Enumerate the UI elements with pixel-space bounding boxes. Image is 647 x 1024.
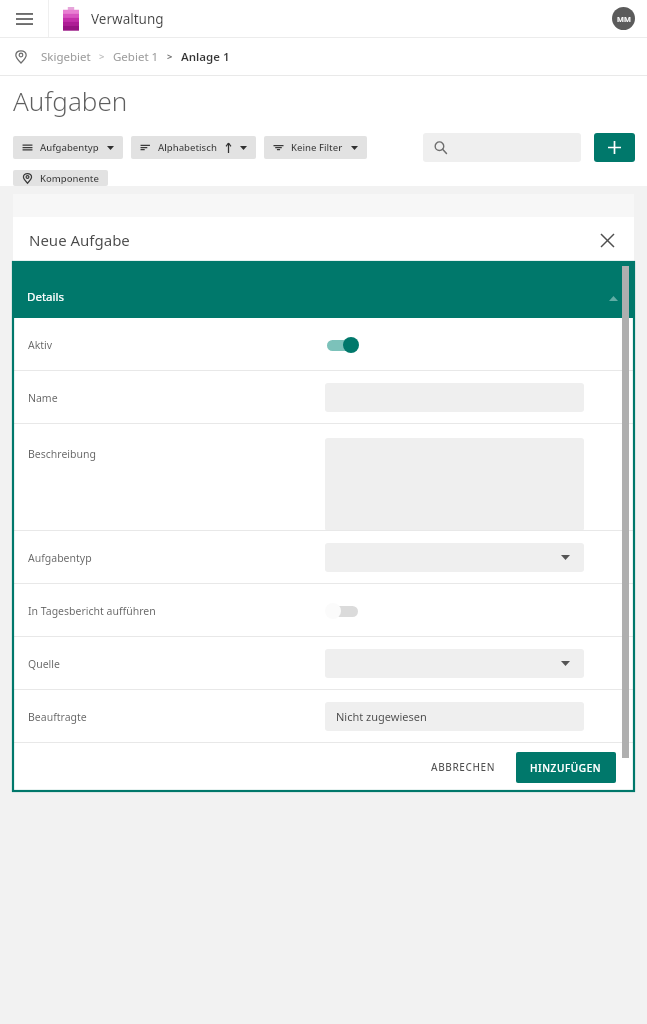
staticText: MM xyxy=(617,14,631,24)
staticText: In Tagesbericht aufführen xyxy=(28,604,156,618)
staticText: Komponente xyxy=(40,172,99,185)
button[interactable]: Gebiet 1 xyxy=(113,49,159,65)
button[interactable]: Fälligkeiten xyxy=(13,247,634,300)
staticText: > xyxy=(99,50,105,63)
staticText: Alphabetisch xyxy=(158,141,217,154)
button[interactable]: Close xyxy=(594,227,620,253)
staticText: Aufgabentyp xyxy=(28,551,92,565)
staticText: HINZUFÜGEN xyxy=(530,761,602,775)
button[interactable]: Menu xyxy=(0,0,48,37)
button[interactable]: Skigebiet xyxy=(41,49,91,65)
button[interactable]: HINZUFÜGEN xyxy=(516,752,616,783)
staticText: Skigebiet xyxy=(41,49,91,65)
staticText: > xyxy=(167,50,173,63)
button[interactable]: Details xyxy=(13,262,634,318)
button[interactable]: Komponente xyxy=(13,170,108,186)
staticText: Aufgaben xyxy=(13,83,128,118)
staticText: Tätigkeiten xyxy=(26,213,86,229)
staticText: Details xyxy=(27,289,64,305)
button[interactable]: Tagesbericht off xyxy=(325,599,367,623)
staticText: Beschreibung xyxy=(28,447,96,461)
staticText: Gebiet 1 xyxy=(113,49,159,65)
button[interactable]: Aufgabentyp xyxy=(13,136,123,159)
staticText: Name xyxy=(28,391,58,405)
staticText: Beauftragte xyxy=(28,710,87,724)
staticText: Verwaltung xyxy=(91,10,164,28)
button[interactable]: Select option xyxy=(325,543,584,572)
button[interactable]: ABBRECHEN xyxy=(419,751,508,783)
staticText: Aufgabentyp xyxy=(40,141,99,154)
button[interactable]: Select option xyxy=(325,649,584,678)
button[interactable]: Weitere Funktion xyxy=(13,353,634,406)
staticText: Keine Filter xyxy=(291,141,343,154)
button[interactable]: Aktiv on xyxy=(325,333,367,357)
button[interactable]: Alphabetisch xyxy=(131,136,256,159)
button[interactable]: Komponenten xyxy=(13,300,634,353)
button[interactable]: Search xyxy=(423,133,581,162)
button[interactable]: Account xyxy=(612,7,635,30)
staticText: ABBRECHEN xyxy=(431,760,496,774)
staticText: Aktiv xyxy=(28,338,53,352)
button[interactable]: Keine Filter xyxy=(264,136,367,159)
staticText: Neue Aufgabe xyxy=(29,230,130,250)
staticText: Quelle xyxy=(28,657,60,671)
button[interactable]: Nicht zugewiesen xyxy=(325,702,584,731)
button[interactable]: Tätigkeiten xyxy=(13,194,634,247)
staticText: Anlage 1 xyxy=(181,49,230,65)
staticText: Nicht zugewiesen xyxy=(336,709,427,724)
button[interactable]: Add xyxy=(594,133,635,162)
